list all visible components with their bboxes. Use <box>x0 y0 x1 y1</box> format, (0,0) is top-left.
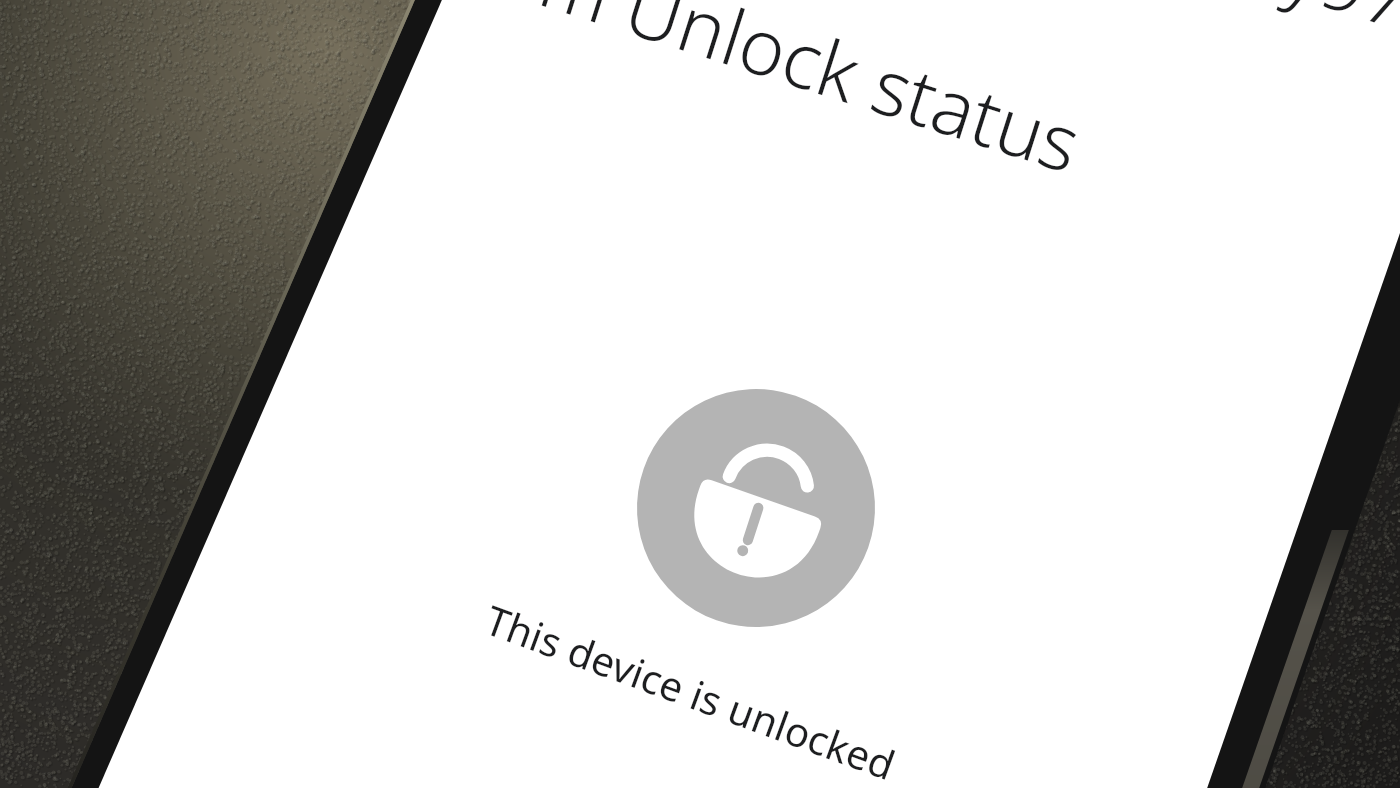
button[interactable]: Unlock status <box>493 0 1127 249</box>
button[interactable]: Device unlocked <box>637 389 875 627</box>
